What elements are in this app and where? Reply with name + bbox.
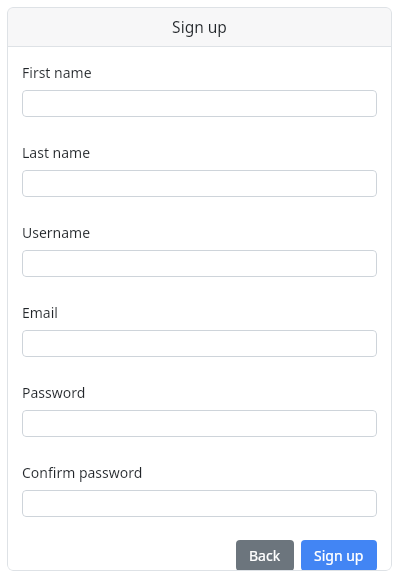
staticText: Back [249,546,281,565]
staticText: Email [22,303,58,322]
button[interactable] [22,330,377,357]
staticText: Confirm password [22,463,143,482]
button[interactable] [22,490,377,517]
button[interactable]: Sign up [301,540,377,571]
staticText: Sign up [172,16,227,37]
staticText: First name [22,63,92,82]
staticText: Password [22,383,86,402]
button[interactable] [22,90,377,117]
button[interactable] [22,250,377,277]
button[interactable] [22,170,377,197]
button[interactable]: Back [236,540,294,571]
staticText: Last name [22,143,91,162]
button[interactable] [22,410,377,437]
staticText: Username [22,223,91,242]
staticText: Sign up [314,546,364,565]
